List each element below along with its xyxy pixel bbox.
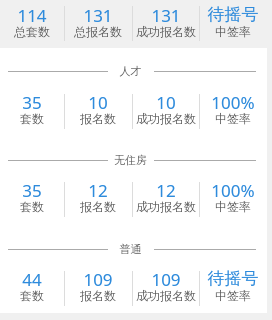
- staticText: 10: [132, 91, 200, 114]
- staticText: 报名数: [64, 111, 132, 126]
- staticText: 中签率: [199, 111, 267, 126]
- button[interactable]: 10: [64, 91, 132, 128]
- button[interactable]: 35: [0, 179, 64, 216]
- staticText: 100%: [199, 179, 267, 202]
- staticText: 131: [64, 4, 132, 27]
- button[interactable]: 131: [64, 4, 132, 41]
- staticText: 12: [132, 179, 200, 202]
- button[interactable]: 12: [64, 179, 132, 216]
- button[interactable]: 109: [132, 268, 200, 305]
- button[interactable]: 普通: [107, 242, 154, 257]
- button[interactable]: 12: [132, 179, 200, 216]
- button[interactable]: 44: [0, 268, 64, 305]
- staticText: 待摇号: [199, 4, 267, 25]
- button[interactable]: 35: [0, 91, 64, 128]
- staticText: 成功报名数: [132, 111, 200, 126]
- staticText: 人才: [107, 64, 154, 78]
- staticText: 成功报名数: [132, 24, 200, 39]
- button[interactable]: 无住房: [107, 153, 154, 168]
- staticText: 成功报名数: [132, 199, 200, 214]
- button[interactable]: 109: [64, 268, 132, 305]
- staticText: 套数: [0, 199, 64, 214]
- staticText: 12: [64, 179, 132, 202]
- button[interactable]: 100%: [199, 91, 267, 128]
- button[interactable]: 人才: [107, 64, 154, 79]
- staticText: 100%: [199, 91, 267, 114]
- staticText: 套数: [0, 288, 64, 303]
- button[interactable]: 待摇号: [199, 4, 267, 41]
- staticText: 普通: [107, 242, 154, 256]
- staticText: 中签率: [199, 288, 267, 303]
- staticText: 待摇号: [199, 268, 267, 289]
- staticText: 10: [64, 91, 132, 114]
- staticText: 109: [64, 268, 132, 291]
- staticText: 35: [0, 179, 64, 202]
- staticText: 中签率: [199, 199, 267, 214]
- other: 摇号统计: [0, 0, 272, 320]
- button[interactable]: 10: [132, 91, 200, 128]
- staticText: 套数: [0, 111, 64, 126]
- staticText: 35: [0, 91, 64, 114]
- button[interactable]: 131: [132, 4, 200, 41]
- staticText: 报名数: [64, 199, 132, 214]
- button[interactable]: 114: [0, 4, 64, 41]
- staticText: 无住房: [107, 153, 154, 167]
- staticText: 总报名数: [64, 24, 132, 39]
- staticText: 成功报名数: [132, 288, 200, 303]
- staticText: 109: [132, 268, 200, 291]
- staticText: 114: [0, 4, 64, 27]
- staticText: 44: [0, 268, 64, 291]
- button[interactable]: 待摇号: [199, 268, 267, 305]
- staticText: 报名数: [64, 288, 132, 303]
- button[interactable]: 100%: [199, 179, 267, 216]
- staticText: 131: [132, 4, 200, 27]
- staticText: 中签率: [199, 24, 267, 39]
- staticText: 总套数: [0, 24, 64, 39]
